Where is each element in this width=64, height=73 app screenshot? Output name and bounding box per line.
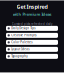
staticText: Daily Design Tips	[11, 27, 35, 30]
button[interactable]: Color Palettes	[6, 40, 58, 45]
staticText: Color Palettes	[11, 41, 32, 44]
staticText: Curated picks refreshed daily	[12, 22, 52, 26]
button[interactable]: Layout Ideas	[6, 47, 58, 52]
staticText: with Premium Ideas	[12, 11, 51, 17]
button[interactable]: Creative Prompts	[6, 33, 58, 38]
staticText: Typography	[11, 55, 27, 58]
staticText: Layout Ideas	[11, 48, 29, 51]
button[interactable]: Daily Design Tips	[6, 26, 58, 31]
staticText: Creative Prompts	[11, 34, 36, 37]
staticText: Get Inspired	[16, 3, 47, 10]
button[interactable]: Typography	[6, 54, 58, 59]
